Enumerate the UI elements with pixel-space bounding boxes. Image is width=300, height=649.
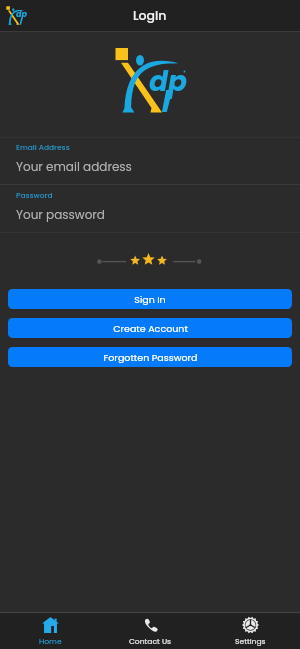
button[interactable]: Password	[0, 189, 300, 235]
staticText: Password	[16, 190, 53, 200]
staticText: Your password	[16, 206, 105, 223]
button[interactable]: Email Address	[0, 141, 300, 187]
button[interactable]: Sign In	[8, 289, 292, 309]
staticText: Home	[39, 636, 62, 647]
button[interactable]: Contact Us	[100, 613, 200, 649]
staticText: Settings	[235, 636, 266, 647]
staticText: Contact Us	[129, 636, 171, 647]
staticText: Email Address	[16, 142, 70, 152]
button[interactable]: Create Account	[8, 318, 292, 338]
staticText: dp	[16, 9, 27, 20]
staticText: Login	[133, 7, 167, 24]
staticText: dp	[149, 62, 188, 101]
staticText: Sign In	[134, 293, 166, 306]
button[interactable]: Settings	[200, 613, 300, 649]
staticText: Create Account	[113, 322, 188, 335]
button[interactable]: Home	[0, 613, 100, 649]
button[interactable]: XDP home	[5, 4, 28, 27]
button[interactable]: Forgotten Password	[8, 347, 292, 367]
staticText: Your email address	[16, 158, 132, 175]
staticText: Forgotten Password	[103, 351, 198, 364]
